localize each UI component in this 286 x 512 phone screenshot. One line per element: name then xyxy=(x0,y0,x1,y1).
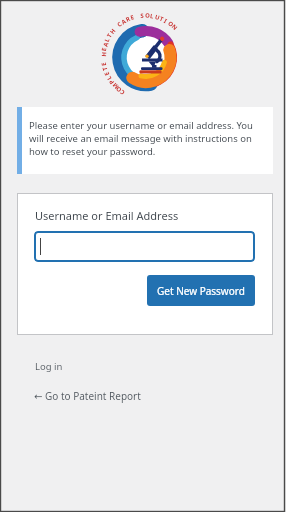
staticText: E xyxy=(129,13,136,22)
staticText: H xyxy=(100,51,108,57)
staticText: O xyxy=(166,19,175,29)
staticText: N xyxy=(170,23,179,32)
staticText: C xyxy=(115,20,124,29)
staticText: O xyxy=(145,12,150,20)
staticText: L xyxy=(149,12,155,21)
staticText: P xyxy=(107,78,116,86)
staticText: O xyxy=(114,84,123,94)
staticText: E xyxy=(102,70,111,77)
staticText: T xyxy=(158,15,165,24)
staticText: U xyxy=(154,13,161,22)
staticText: R xyxy=(124,15,131,24)
staticText: M xyxy=(111,81,121,91)
staticText: E xyxy=(100,46,109,52)
button[interactable]: Log in xyxy=(30,355,58,368)
button[interactable] xyxy=(34,231,255,262)
staticText: Username or Email Address xyxy=(35,208,179,223)
staticText: Log in xyxy=(35,360,63,373)
button[interactable]: Get New Password xyxy=(147,275,255,306)
staticText: T xyxy=(101,66,109,72)
staticText: T xyxy=(105,32,114,39)
staticText: E xyxy=(100,61,108,66)
staticText: I xyxy=(162,17,169,26)
staticText: ← Go to Pateint Report xyxy=(34,389,141,403)
staticText: S xyxy=(140,12,144,20)
button[interactable]: ← Go to Pateint Report xyxy=(29,384,136,398)
staticText: A xyxy=(101,41,111,48)
staticText: L xyxy=(103,36,112,43)
staticText: C xyxy=(118,88,126,96)
staticText: H xyxy=(108,27,118,36)
staticText: L xyxy=(104,74,113,81)
staticText: Get New Password xyxy=(157,284,245,298)
staticText: Please enter your username or email addr… xyxy=(29,119,253,158)
staticText: A xyxy=(120,17,128,26)
